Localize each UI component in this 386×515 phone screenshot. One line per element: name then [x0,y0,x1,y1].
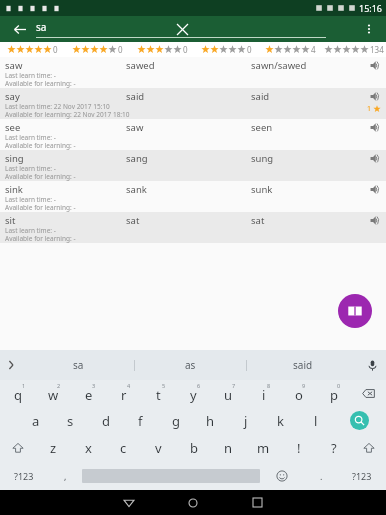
button[interactable]: Backspace [351,380,386,407]
button[interactable]: Play sound [369,214,381,226]
button[interactable]: h [193,407,228,434]
button[interactable]: x [71,434,106,462]
staticText: sing [5,152,24,165]
staticText: Last learn time: - [5,195,56,204]
button[interactable]: 7 [211,380,246,407]
staticText: m [257,439,270,457]
button[interactable]: Home [178,490,208,515]
staticText: i [262,386,266,404]
button[interactable]: Clear [172,19,192,39]
button[interactable]: g [158,407,193,434]
button[interactable]: k [263,407,298,434]
staticText: b [190,439,198,457]
staticText: sawed [126,59,155,72]
button[interactable]: ?123 [0,462,48,490]
button[interactable]: Play sound [369,152,381,164]
button[interactable]: Emoji [260,462,304,490]
staticText: sat [251,214,265,227]
staticText: d [102,412,110,430]
button[interactable]: m [246,434,281,462]
staticText: , [64,470,67,482]
button[interactable]: 8 [246,380,281,407]
staticText: e [85,386,93,404]
button[interactable]: 9 [281,380,316,407]
button[interactable]: saw [0,57,386,88]
button[interactable]: 5 [141,380,176,407]
button[interactable]: Voice input [358,350,386,380]
staticText: ? [331,439,337,457]
staticText: 0 [183,44,188,55]
button[interactable]: f [123,407,158,434]
staticText: 4 [311,44,316,55]
button[interactable]: Dictionary [338,294,372,328]
button[interactable]: ! [281,434,316,462]
button[interactable]: 1 [0,380,36,407]
staticText: saw [5,59,23,72]
staticText: z [50,439,57,457]
button[interactable]: sing [0,150,386,181]
staticText: said [251,90,270,103]
button[interactable]: Expand [0,350,22,380]
staticText: . [320,470,323,482]
button[interactable]: v [141,434,176,462]
staticText: n [224,439,233,457]
button[interactable]: 4 [106,380,141,407]
button[interactable]: , [48,462,82,490]
button[interactable]: 3 [71,380,106,407]
button[interactable]: sink [0,181,386,212]
staticText: sat [126,214,140,227]
staticText: sa [73,358,84,372]
button[interactable]: as [135,350,246,380]
button[interactable]: said [247,350,358,380]
staticText: sunk [251,183,273,196]
staticText: 9 [302,382,306,389]
staticText: o [295,386,303,404]
staticText: 0 [337,382,341,389]
staticText: 15:16 [359,2,383,14]
button[interactable]: see [0,119,386,150]
staticText: sank [126,183,147,196]
button[interactable]: j [228,407,263,434]
staticText: 134 [370,44,384,55]
staticText: 6 [197,382,201,389]
button[interactable]: Search [333,407,386,434]
staticText: Available for learning: - [5,141,76,150]
button[interactable]: z [36,434,71,462]
staticText: 1 [367,104,372,114]
staticText: sang [126,152,148,165]
button[interactable]: d [88,407,123,434]
button[interactable]: Play sound [369,90,381,102]
button[interactable]: say [0,88,386,119]
button[interactable]: Recents [242,490,272,515]
button[interactable]: 2 [36,380,71,407]
button[interactable]: c [106,434,141,462]
button[interactable]: Back [8,18,30,40]
button[interactable]: Back [114,490,144,515]
button[interactable]: Play sound [369,121,381,133]
staticText: f [138,412,143,430]
button[interactable]: ?123 [338,462,386,490]
button[interactable]: sa [22,350,134,380]
button[interactable]: Shift [351,434,386,462]
button[interactable]: Play sound [369,59,381,71]
button[interactable]: b [176,434,211,462]
button[interactable]: 0 [316,380,351,407]
staticText: Last learn time: - [5,133,56,142]
button[interactable]: n [211,434,246,462]
button[interactable]: 6 [176,380,211,407]
staticText: l [314,412,318,430]
button[interactable]: Play sound [369,183,381,195]
staticText: ?123 [352,470,372,482]
staticText: p [330,386,338,404]
staticText: 8 [267,382,271,389]
button[interactable]: l [298,407,333,434]
button[interactable]: ? [316,434,351,462]
button[interactable]: a [18,407,53,434]
button[interactable]: . [304,462,338,490]
button[interactable]: Shift [0,434,36,462]
button[interactable]: sit [0,212,386,243]
staticText: sit [5,214,16,227]
button[interactable]: More options [358,18,380,40]
button[interactable]: s [53,407,88,434]
